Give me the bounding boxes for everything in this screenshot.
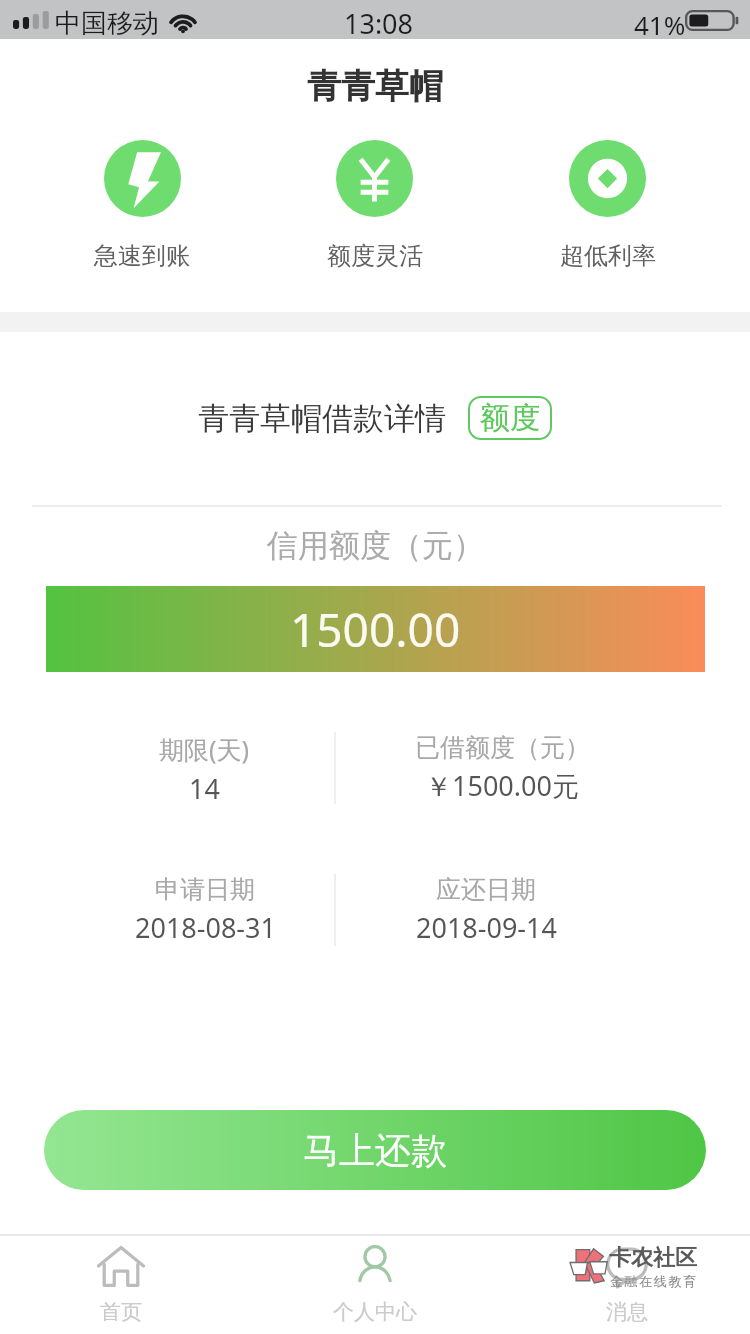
staticText: 青青草帽借款详情 bbox=[198, 399, 446, 438]
staticText: 41% bbox=[634, 7, 686, 42]
staticText: 超低利率 bbox=[560, 241, 656, 271]
staticText: 1500.00 bbox=[290, 598, 461, 661]
staticText: 额度灵活 bbox=[327, 241, 423, 271]
button[interactable]: 消息 bbox=[565, 1236, 689, 1334]
staticText: ￥1500.00元 bbox=[425, 767, 579, 804]
staticText: 2018-08-31 bbox=[135, 909, 276, 946]
staticText: 期限(天) bbox=[159, 732, 250, 766]
staticText: 13:08 bbox=[344, 5, 414, 42]
staticText: 马上还款 bbox=[303, 1128, 447, 1173]
staticText: 金融在线教育 bbox=[610, 1273, 698, 1289]
staticText: 个人中心 bbox=[333, 1299, 417, 1325]
staticText: 急速到账 bbox=[94, 241, 190, 271]
staticText: 青青草帽 bbox=[307, 65, 443, 108]
staticText: 消息 bbox=[606, 1299, 648, 1325]
staticText: 14 bbox=[189, 770, 220, 807]
staticText: 2018-09-14 bbox=[416, 909, 557, 946]
staticText: 已借额度（元） bbox=[415, 732, 590, 763]
staticText: 申请日期 bbox=[155, 874, 255, 905]
button[interactable]: 首页 bbox=[59, 1236, 183, 1334]
staticText: 应还日期 bbox=[436, 874, 536, 905]
staticText: 中国移动 bbox=[55, 7, 159, 40]
staticText: 信用额度（元） bbox=[267, 526, 484, 565]
staticText: 首页 bbox=[100, 1299, 142, 1325]
button[interactable]: 马上还款 bbox=[44, 1110, 706, 1190]
button[interactable]: 个人中心 bbox=[313, 1236, 437, 1334]
staticText: 额度 bbox=[480, 399, 540, 437]
staticText: 卡农社区 bbox=[609, 1244, 697, 1272]
